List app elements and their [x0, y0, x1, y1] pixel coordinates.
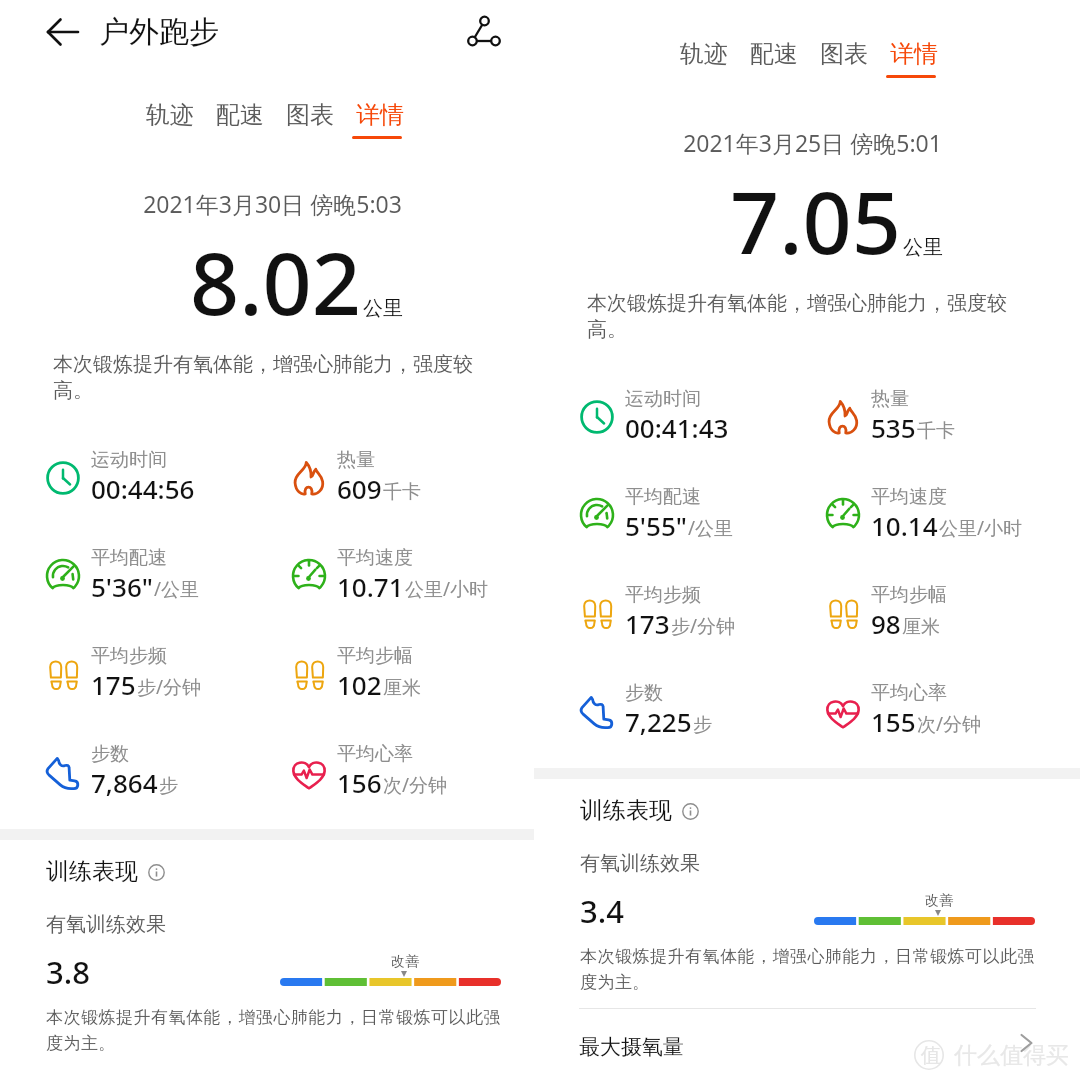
staticText: 训练表现	[46, 857, 138, 886]
staticText: /公里	[154, 576, 200, 602]
button[interactable]: 详情	[351, 91, 409, 139]
staticText: 3.8	[46, 951, 90, 993]
staticText: 厘米	[902, 615, 940, 639]
staticText: 运动时间	[91, 448, 167, 472]
staticText: 运动时间	[625, 387, 701, 411]
staticText: 步/分钟	[671, 613, 736, 639]
staticText: 配速	[216, 100, 264, 130]
staticText: 5'36"	[91, 569, 153, 604]
staticText: 图表	[286, 100, 334, 130]
staticText: 00:41:43	[625, 410, 729, 445]
staticText: 热量	[337, 448, 375, 472]
button[interactable]: 运动时间	[580, 382, 820, 450]
staticText: 609	[337, 471, 382, 506]
staticText: 步	[159, 774, 178, 798]
staticText: 175	[91, 667, 136, 702]
button[interactable]: 训练表现	[580, 796, 689, 825]
staticText: 千卡	[383, 480, 421, 504]
button[interactable]: 平均步幅	[292, 639, 532, 707]
staticText: 次/分钟	[917, 711, 982, 737]
staticText: 10.14	[871, 508, 938, 543]
button[interactable]: 图表	[815, 30, 873, 78]
button[interactable]: 图表	[281, 91, 339, 139]
staticText: 千卡	[917, 419, 955, 443]
staticText: 本次锻炼提升有氧体能，增强心肺能力，强度较高。	[53, 352, 495, 403]
button[interactable]: 平均步频	[46, 639, 286, 707]
button[interactable]: 训练表现	[46, 857, 155, 886]
staticText: 次/分钟	[383, 772, 448, 798]
staticText: 什么值得买	[954, 1041, 1069, 1070]
staticText: 平均步幅	[337, 644, 413, 668]
staticText: 本次锻炼提升有氧体能，增强心肺能力，日常锻炼可以此强度为主。	[46, 1007, 508, 1054]
staticText: 图表	[820, 39, 868, 69]
staticText: 平均速度	[871, 485, 947, 509]
staticText: 公里/小时	[939, 515, 1023, 541]
staticText: 最大摄氧量	[579, 1034, 684, 1060]
staticText: 平均心率	[337, 742, 413, 766]
staticText: 有氧训练效果	[580, 851, 700, 876]
staticText: /公里	[688, 515, 734, 541]
staticText: 步/分钟	[137, 674, 202, 700]
staticText: 改善	[925, 892, 953, 910]
button[interactable]: Share	[460, 7, 508, 55]
staticText: 155	[871, 704, 916, 739]
button[interactable]: 平均步幅	[826, 578, 1066, 646]
staticText: 00:44:56	[91, 471, 195, 506]
staticText: 平均步幅	[871, 583, 947, 607]
staticText: 5'55"	[625, 508, 687, 543]
button[interactable]: 热量	[826, 382, 1066, 450]
button[interactable]: 详情	[885, 30, 943, 78]
staticText: 156	[337, 765, 382, 800]
button[interactable]: 热量	[292, 443, 532, 511]
button[interactable]: 平均配速	[46, 541, 286, 609]
button[interactable]: 轨迹	[675, 30, 733, 78]
button[interactable]: 步数	[580, 676, 820, 744]
staticText: 7.05	[730, 162, 901, 279]
staticText: 公里	[903, 235, 943, 260]
button[interactable]: Back	[39, 8, 87, 56]
staticText: 步	[693, 713, 712, 737]
staticText: 值	[921, 1043, 941, 1068]
staticText: 公里	[363, 296, 403, 321]
button[interactable]: 平均步频	[580, 578, 820, 646]
staticText: 7,225	[625, 704, 692, 739]
staticText: 173	[625, 606, 670, 641]
staticText: 2021年3月25日 傍晚5:01	[539, 127, 1080, 158]
staticText: 2021年3月30日 傍晚5:03	[0, 188, 534, 219]
staticText: 98	[871, 606, 901, 641]
button[interactable]: 平均速度	[292, 541, 532, 609]
staticText: 有氧训练效果	[46, 912, 166, 937]
staticText: 平均步频	[625, 583, 701, 607]
button[interactable]: 步数	[46, 737, 286, 805]
staticText: 3.4	[580, 890, 624, 932]
staticText: 热量	[871, 387, 909, 411]
staticText: 训练表现	[580, 796, 672, 825]
button[interactable]: 轨迹	[141, 91, 199, 139]
button[interactable]: 运动时间	[46, 443, 286, 511]
staticText: 535	[871, 410, 916, 445]
staticText: 102	[337, 667, 382, 702]
staticText: 步数	[625, 681, 663, 705]
staticText: 详情	[356, 100, 404, 130]
button[interactable]: 平均心率	[292, 737, 532, 805]
staticText: 平均配速	[625, 485, 701, 509]
button[interactable]: 配速	[211, 91, 269, 139]
button[interactable]: 平均配速	[580, 480, 820, 548]
staticText: 平均配速	[91, 546, 167, 570]
staticText: 改善	[391, 953, 419, 971]
staticText: 本次锻炼提升有氧体能，增强心肺能力，日常锻炼可以此强度为主。	[580, 946, 1042, 993]
staticText: 轨迹	[680, 39, 728, 69]
staticText: 8.02	[190, 223, 361, 340]
staticText: 10.71	[337, 569, 404, 604]
staticText: 户外跑步	[99, 13, 219, 51]
button[interactable]: 配速	[745, 30, 803, 78]
staticText: 配速	[750, 39, 798, 69]
staticText: 公里/小时	[405, 576, 489, 602]
staticText: 平均速度	[337, 546, 413, 570]
staticText: 步数	[91, 742, 129, 766]
staticText: 轨迹	[146, 100, 194, 130]
staticText: 详情	[890, 39, 938, 69]
button[interactable]: 平均心率	[826, 676, 1066, 744]
staticText: 平均心率	[871, 681, 947, 705]
button[interactable]: 平均速度	[826, 480, 1066, 548]
